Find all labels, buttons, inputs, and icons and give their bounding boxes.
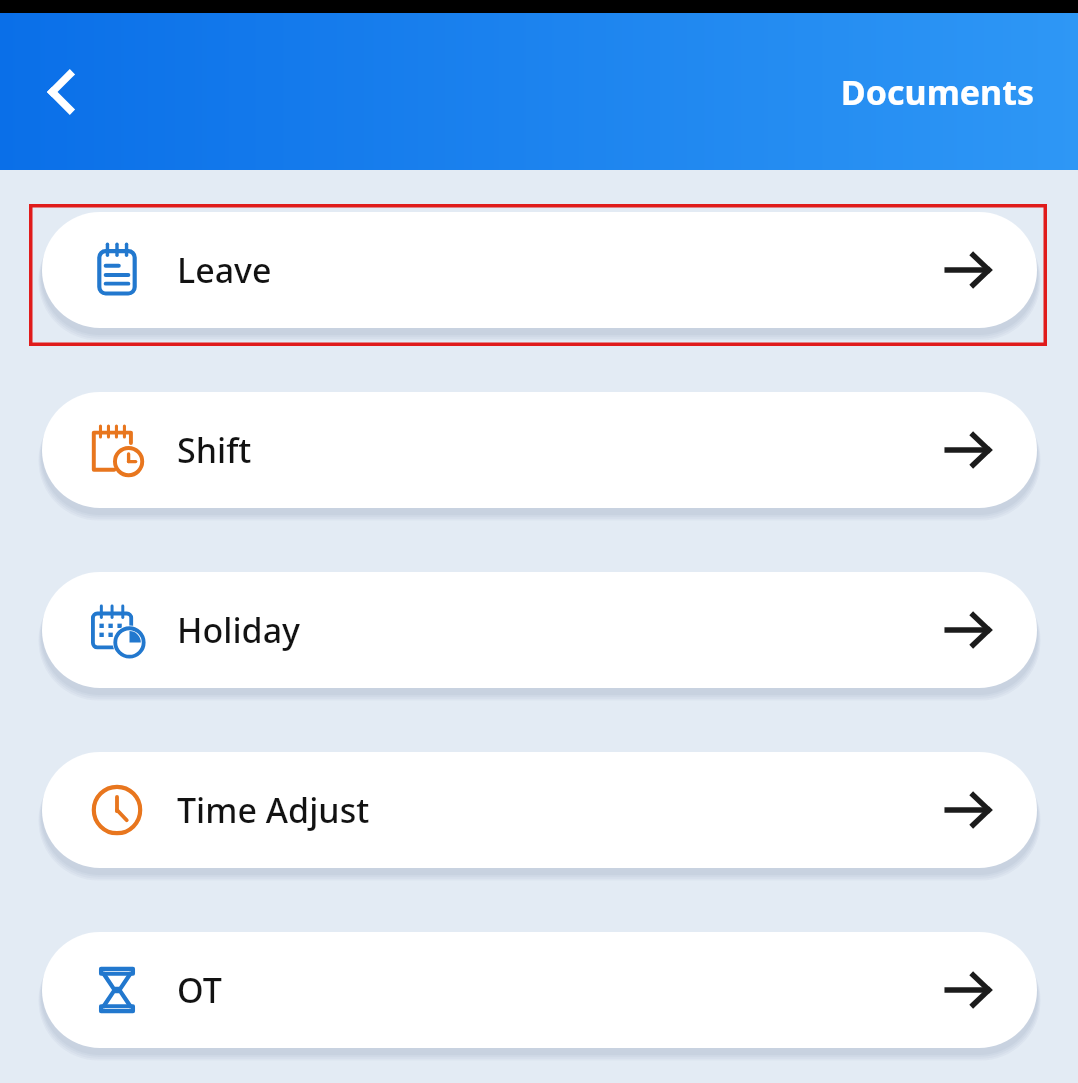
staticText: Documents	[840, 69, 1034, 115]
staticText: Holiday	[177, 607, 939, 653]
button[interactable]: Shift	[42, 392, 1037, 508]
button[interactable]: Holiday	[42, 572, 1037, 688]
button[interactable]: Time Adjust	[42, 752, 1037, 868]
button[interactable]: OT	[42, 932, 1037, 1048]
staticText: OT	[177, 967, 939, 1013]
staticText: Leave	[177, 247, 939, 293]
button[interactable]: Leave	[42, 212, 1037, 328]
staticText: Time Adjust	[177, 787, 939, 833]
staticText: Shift	[177, 427, 939, 473]
button[interactable]: Back	[24, 55, 98, 129]
